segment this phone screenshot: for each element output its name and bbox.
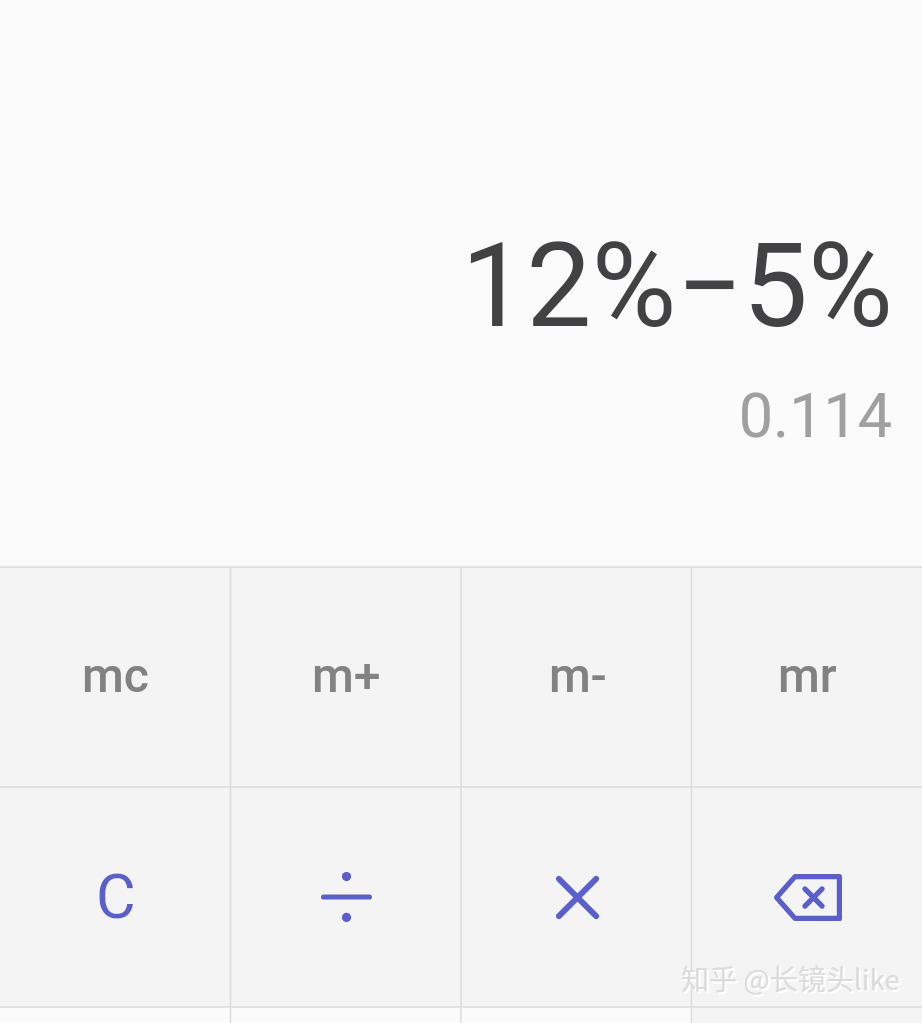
button[interactable]: Backspace [693,787,922,1007]
button[interactable]: Memory recall [693,567,922,787]
button[interactable]: Eight [231,1007,462,1023]
staticText: 0.114 [738,380,892,451]
button[interactable]: Memory clear [0,567,231,787]
staticText: mr [778,647,837,703]
staticText: m- [549,647,607,703]
button[interactable]: Seven [0,1007,231,1023]
button[interactable]: Divide [231,787,462,1007]
staticText: 知乎 @长镜头like [681,958,900,999]
button[interactable]: Subtract [693,1007,922,1023]
button[interactable]: Memory subtract [462,567,693,787]
button[interactable]: Clear [0,787,231,1007]
staticText: 12%−5% [461,218,893,354]
staticText: mc [82,647,149,703]
button[interactable]: Multiply [462,787,693,1007]
button[interactable]: Nine [462,1007,693,1023]
staticText: C [96,861,136,932]
button[interactable]: Memory add [231,567,462,787]
staticText: m+ [312,647,381,703]
staticText: 知乎 @长镜头like [683,960,902,1001]
